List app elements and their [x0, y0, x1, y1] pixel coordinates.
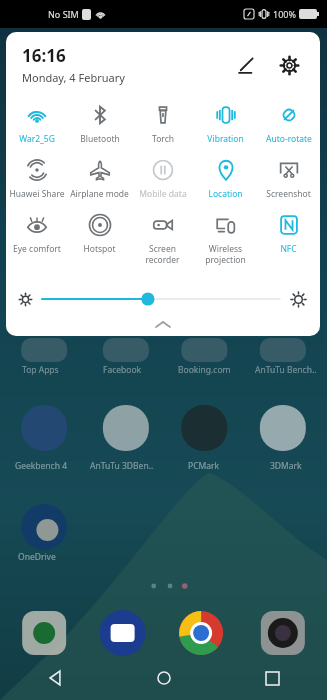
button[interactable]: Vibration — [194, 99, 257, 150]
staticText: Airplane mode — [70, 188, 129, 200]
button[interactable]: Collapse — [6, 316, 320, 333]
button[interactable] — [6, 282, 320, 316]
staticText: Auto-rotate — [266, 133, 312, 145]
staticText: Huawei Share — [9, 188, 65, 200]
button[interactable]: Bluetooth — [68, 99, 131, 150]
button[interactable]: Edit — [228, 48, 262, 82]
staticText: OneDrive — [18, 551, 56, 563]
button[interactable]: Back — [0, 656, 109, 700]
button[interactable]: Screen recorder — [131, 209, 194, 270]
staticText: War2_5G — [19, 133, 55, 145]
staticText: Screenshot — [266, 188, 311, 200]
staticText: Torch — [152, 133, 174, 145]
button[interactable]: Torch — [131, 99, 194, 150]
staticText: Geekbench 4 — [15, 460, 67, 472]
button[interactable]: Recents — [218, 656, 327, 700]
button[interactable]: War2_5G — [6, 99, 68, 150]
staticText: NFC — [280, 243, 297, 255]
button[interactable]: Screenshot — [257, 154, 320, 205]
button[interactable]: Auto-rotate — [257, 99, 320, 150]
button[interactable]: Settings — [272, 48, 306, 82]
staticText: Bluetooth — [80, 133, 120, 145]
button[interactable]: Eye comfort — [6, 209, 68, 260]
staticText: Hotspot — [83, 243, 116, 255]
staticText: Vibration — [207, 133, 244, 145]
button[interactable]: NFC — [257, 209, 320, 260]
staticText: AnTuTu Bench.. — [255, 364, 317, 376]
button[interactable]: Airplane mode — [68, 154, 131, 205]
button[interactable]: Home — [109, 656, 218, 700]
staticText: Location — [208, 188, 243, 200]
staticText: Top Apps — [22, 364, 59, 376]
staticText: Wireless projection — [205, 243, 246, 265]
staticText: Screen recorder — [145, 243, 180, 265]
staticText: Facebook — [103, 364, 142, 376]
staticText: 3DMark — [270, 460, 302, 472]
staticText: PCMark — [188, 460, 220, 472]
button[interactable]: Huawei Share — [6, 154, 68, 205]
staticText: No SIM — [48, 8, 79, 20]
button[interactable]: Mobile data — [131, 154, 194, 205]
button[interactable]: Location — [194, 154, 257, 205]
staticText: 100% — [273, 8, 296, 20]
staticText: AnTuTu 3DBen.. — [90, 460, 154, 472]
button[interactable]: Wireless projection — [194, 209, 257, 270]
staticText: Mobile data — [139, 188, 187, 200]
button[interactable]: Hotspot — [68, 209, 131, 260]
staticText: Eye comfort — [13, 243, 61, 255]
staticText: Booking.com — [178, 364, 231, 376]
staticText: Monday, 4 February — [22, 70, 125, 85]
staticText: 16:16 — [22, 44, 66, 67]
